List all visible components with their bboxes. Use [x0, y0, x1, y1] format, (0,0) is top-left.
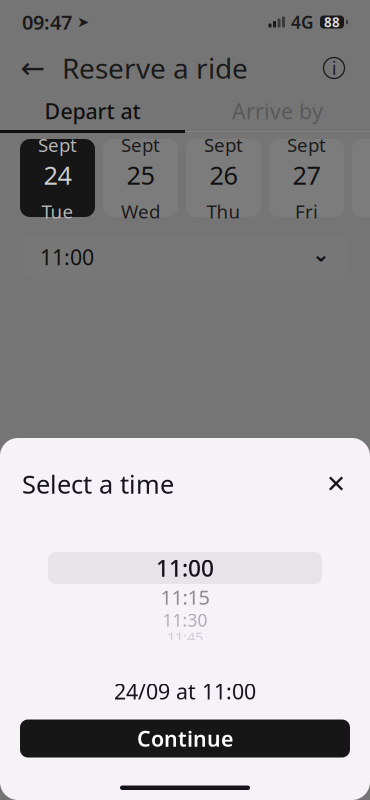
staticText: Reserve a ride	[62, 49, 248, 87]
staticText: 24	[43, 158, 71, 192]
staticText: 25	[126, 158, 154, 192]
staticText: Wed	[121, 199, 160, 224]
staticText: i	[332, 56, 336, 79]
staticText: 26	[209, 158, 237, 192]
staticText: ➤	[72, 14, 89, 30]
staticText: 11:00	[156, 553, 214, 583]
staticText: Depart at	[44, 97, 140, 125]
staticText: 11:00	[40, 243, 94, 271]
staticText: Sept	[204, 132, 243, 157]
staticText: ⌄	[312, 242, 330, 266]
button[interactable]: Sept	[269, 139, 344, 217]
staticText: 11:15	[160, 584, 209, 610]
staticText: ←	[20, 51, 45, 85]
staticText: Fri	[295, 199, 318, 224]
staticText: 4G	[291, 10, 314, 33]
button[interactable]: 11:00	[20, 236, 350, 278]
staticText: Arrive by	[232, 97, 323, 125]
button[interactable]: Sept	[20, 139, 95, 217]
button[interactable]: Continue	[20, 719, 350, 757]
button[interactable]: Sept	[103, 139, 178, 217]
button[interactable]: Back	[16, 48, 50, 88]
staticText: 24/09 at 11:00	[114, 677, 256, 705]
staticText: Sept	[38, 132, 77, 157]
button[interactable]: Close	[318, 466, 354, 502]
staticText: Thu	[206, 199, 240, 224]
staticText: Sept	[121, 132, 160, 157]
staticText: 11:30	[162, 608, 207, 631]
staticText: Select a time	[22, 467, 174, 501]
button[interactable]: Sept	[186, 139, 261, 217]
button[interactable]: Information	[314, 48, 354, 88]
button[interactable]: Depart at	[0, 92, 185, 130]
staticText: 27	[292, 158, 320, 192]
staticText: Tue	[41, 199, 73, 224]
staticText: Sept	[287, 132, 326, 157]
staticText: 09:47	[22, 9, 72, 35]
staticText: 88	[324, 13, 340, 31]
staticText: Continue	[137, 724, 233, 753]
button[interactable]: Arrive by	[185, 92, 370, 130]
staticText: ✕	[326, 470, 346, 498]
staticText: 11:45	[167, 627, 203, 647]
